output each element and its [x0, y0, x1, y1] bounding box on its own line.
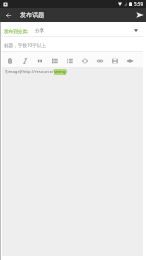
button[interactable]: Back: [0, 8, 16, 22]
button[interactable]: Bold: [2, 52, 17, 67]
staticText: 分享: [35, 28, 45, 34]
staticText: 发布话题: [20, 11, 44, 19]
staticText: 标题，字数10字以上: [4, 42, 47, 48]
button[interactable]: Link: [92, 52, 107, 67]
button[interactable]: 发布到分类:: [2, 22, 143, 36]
button[interactable]: Code: [77, 52, 92, 67]
button[interactable]: Quote: [32, 52, 47, 67]
staticText: ![image](http://resource/: [5, 69, 54, 75]
button[interactable]: Preview: [122, 52, 137, 67]
staticText: 5:59: [134, 1, 144, 7]
button[interactable]: Italic: [17, 52, 32, 67]
button[interactable]: Send: [133, 8, 146, 22]
button[interactable]: Bullet list: [47, 52, 62, 67]
staticText: string: [54, 69, 66, 75]
button[interactable]: Numbered list: [62, 52, 77, 67]
staticText: 发布到分类:: [4, 28, 29, 34]
staticText: ): [66, 69, 68, 75]
button[interactable]: Image: [107, 52, 122, 67]
